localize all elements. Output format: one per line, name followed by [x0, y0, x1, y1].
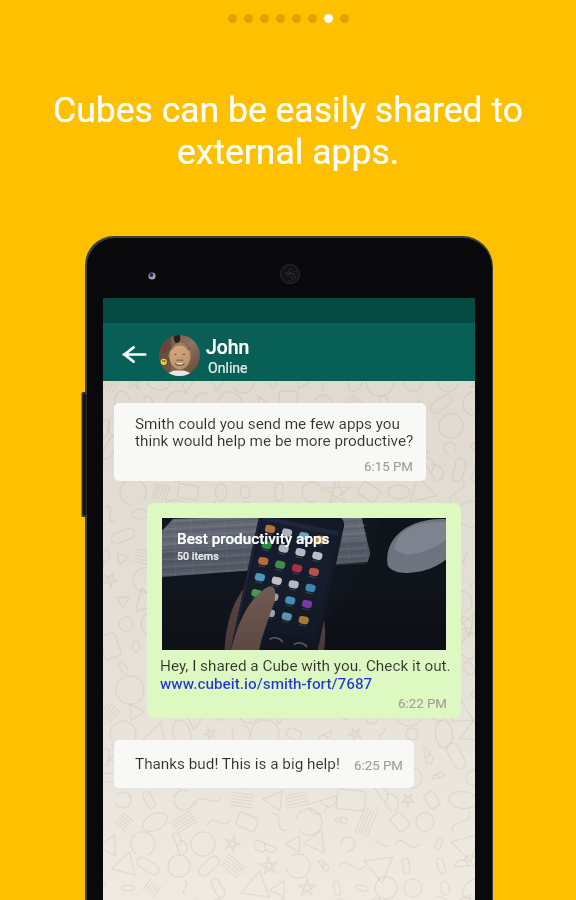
staticText: 6:25 PM: [354, 758, 403, 774]
staticText: www.cubeit.io/smith-fort/7687: [160, 675, 373, 693]
button[interactable]: Back: [103, 323, 475, 381]
button[interactable]: Back: [111, 325, 157, 383]
button[interactable]: [228, 14, 237, 23]
staticText: 6:22 PM: [398, 696, 447, 712]
staticText: 50 items: [177, 550, 219, 563]
staticText: Best productivity apps: [177, 530, 330, 548]
button[interactable]: [324, 14, 333, 23]
button[interactable]: [244, 14, 253, 23]
staticText: John: [206, 336, 250, 359]
staticText: Online: [208, 360, 248, 377]
button[interactable]: [308, 14, 317, 23]
staticText: Smith could you send me few apps you thi…: [135, 415, 414, 450]
button[interactable]: Smith could you send me few apps you thi…: [114, 403, 426, 481]
button[interactable]: Best productivity apps: [147, 503, 461, 718]
button[interactable]: [340, 14, 349, 23]
staticText: Thanks bud! This is a big help!: [135, 755, 340, 773]
staticText: Hey, I shared a Cube with you. Check it …: [160, 657, 451, 675]
button[interactable]: Thanks bud! This is a big help!: [114, 740, 414, 788]
button[interactable]: [260, 14, 269, 23]
staticText: 6:15 PM: [364, 459, 413, 475]
button[interactable]: [276, 14, 285, 23]
button[interactable]: [292, 14, 301, 23]
staticText: Cubes can be easily shared to external a…: [0, 89, 576, 173]
